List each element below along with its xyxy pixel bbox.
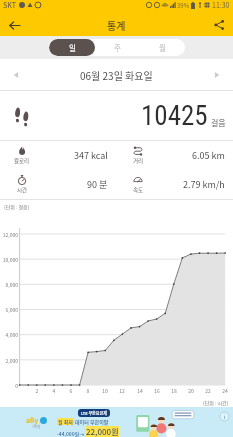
staticText: 6.05 km: [192, 149, 225, 162]
staticText: 시간: [17, 186, 28, 194]
staticText: 12,000: [0, 231, 18, 238]
staticText: 22,000원: [86, 426, 119, 437]
button[interactable]: 칼로리: [0, 141, 116, 170]
staticText: 속도: [133, 186, 144, 194]
staticText: 12: [117, 387, 127, 394]
staticText: 20: [186, 387, 196, 394]
staticText: SKT: [3, 0, 17, 10]
button[interactable]: 일: [49, 39, 95, 56]
button[interactable]: 월: [140, 39, 185, 56]
staticText: 8,000: [0, 281, 18, 288]
staticText: 4,000: [0, 331, 18, 338]
staticText: 347 kcal: [74, 149, 108, 162]
staticText: 2: [32, 387, 42, 394]
staticText: 4: [49, 387, 59, 394]
button[interactable]: Share: [209, 15, 229, 35]
staticText: 주: [114, 42, 121, 53]
button[interactable]: Previous day: [8, 67, 24, 83]
staticText: 걸음: [211, 117, 226, 129]
button[interactable]: 시간: [0, 170, 116, 199]
staticText: 24: [220, 387, 230, 394]
staticText: 월: [159, 42, 166, 53]
staticText: 데이터 무한이팔: [75, 418, 109, 425]
staticText: 6: [66, 387, 76, 394]
staticText: (단위 : 시간): [203, 399, 229, 406]
staticText: 월 최저: [58, 418, 73, 425]
staticText: 거리: [133, 157, 144, 165]
staticText: 90 분: [87, 178, 108, 191]
staticText: 11:30: [212, 0, 230, 10]
staticText: ally: [26, 415, 39, 425]
button[interactable]: ally: [0, 407, 233, 437]
button[interactable]: Back: [4, 15, 24, 35]
staticText: 14: [135, 387, 145, 394]
staticText: 6,000: [0, 306, 18, 313]
staticText: 칼로리: [14, 157, 30, 165]
staticText: 10: [100, 387, 110, 394]
staticText: 16: [152, 387, 162, 394]
staticText: 39%: [177, 1, 190, 10]
staticText: 8: [83, 387, 93, 394]
staticText: 통계: [107, 18, 126, 32]
other: Ad info: [220, 412, 229, 421]
staticText: 일: [69, 42, 76, 53]
staticText: 2,000: [0, 357, 18, 364]
staticText: i: [224, 413, 226, 420]
staticText: 10,000: [0, 256, 18, 263]
button[interactable]: 속도: [116, 170, 233, 199]
staticText: (단위 : 걸음): [4, 203, 30, 210]
staticText: 06월 23일 화요일: [80, 68, 153, 82]
staticText: 10425: [141, 100, 208, 132]
button[interactable]: Next day: [209, 67, 225, 83]
staticText: 18: [169, 387, 179, 394]
button[interactable]: 주: [95, 39, 140, 56]
staticText: 0: [0, 382, 18, 389]
staticText: LTE 무한요금제: [81, 410, 107, 416]
staticText: 2.79 km/h: [183, 178, 225, 191]
staticText: 22: [203, 387, 213, 394]
staticText: 기다림: [32, 425, 41, 429]
staticText: -44,000원→: [57, 430, 85, 437]
button[interactable]: 거리: [116, 141, 233, 170]
